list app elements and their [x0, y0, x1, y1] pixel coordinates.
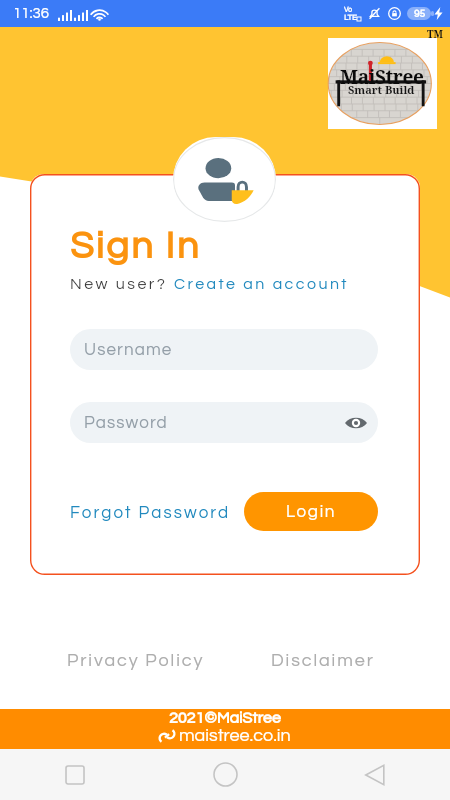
button[interactable]: Password	[70, 402, 378, 443]
staticText: 11:36	[13, 6, 50, 21]
button[interactable]: Sign In	[70, 227, 201, 266]
button[interactable]: Privacy Policy	[67, 651, 205, 670]
button[interactable]: Show password	[343, 410, 369, 436]
button[interactable]: Forgot Password	[70, 504, 231, 522]
staticText: Password	[84, 414, 168, 432]
staticText: Smart Build	[348, 82, 415, 97]
staticText: TM	[427, 27, 444, 41]
staticText: MaiStree	[340, 64, 424, 90]
staticText: maistree.co.in	[179, 726, 291, 745]
button[interactable]: Username	[70, 329, 378, 370]
staticText: Login	[286, 503, 337, 521]
staticText: 95	[414, 9, 425, 19]
button[interactable]: Recents	[0, 749, 150, 800]
staticText: LTE	[344, 13, 357, 21]
staticText: 2021©MaiStree	[169, 710, 281, 726]
staticText: New user?	[70, 276, 174, 292]
staticText: Username	[84, 341, 173, 359]
staticText: Vo	[344, 6, 353, 13]
button[interactable]: Login	[244, 492, 378, 531]
button[interactable]: Home	[150, 749, 300, 800]
button[interactable]: Disclaimer	[271, 651, 375, 670]
button[interactable]: Create an account	[174, 276, 349, 292]
button[interactable]: Back	[300, 749, 450, 800]
